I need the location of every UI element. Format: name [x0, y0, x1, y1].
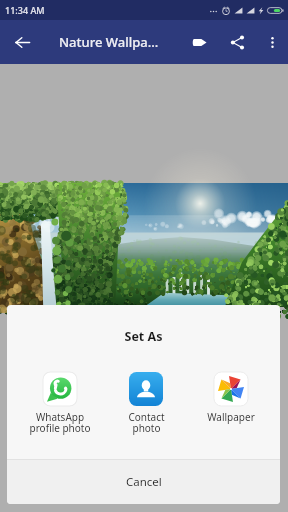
- staticText: 11:34 AM: [5, 4, 45, 16]
- button[interactable]: WhatsApp profile photo: [19, 372, 101, 435]
- button[interactable]: Share: [218, 23, 256, 61]
- button[interactable]: Back: [0, 20, 44, 64]
- button[interactable]: Wallpaper: [190, 372, 272, 424]
- staticText: Cancel: [126, 474, 162, 490]
- staticText: Nature Wallpa…: [59, 33, 180, 51]
- staticText: WhatsApp profile photo: [29, 410, 91, 435]
- button[interactable]: Contact photo: [105, 372, 187, 435]
- button[interactable]: Cancel: [7, 460, 280, 504]
- staticText: Wallpaper: [207, 410, 255, 424]
- button[interactable]: More options: [256, 26, 288, 58]
- staticText: Contact photo: [128, 410, 165, 435]
- staticText: Set As: [7, 328, 280, 345]
- button[interactable]: Tag: [180, 23, 218, 61]
